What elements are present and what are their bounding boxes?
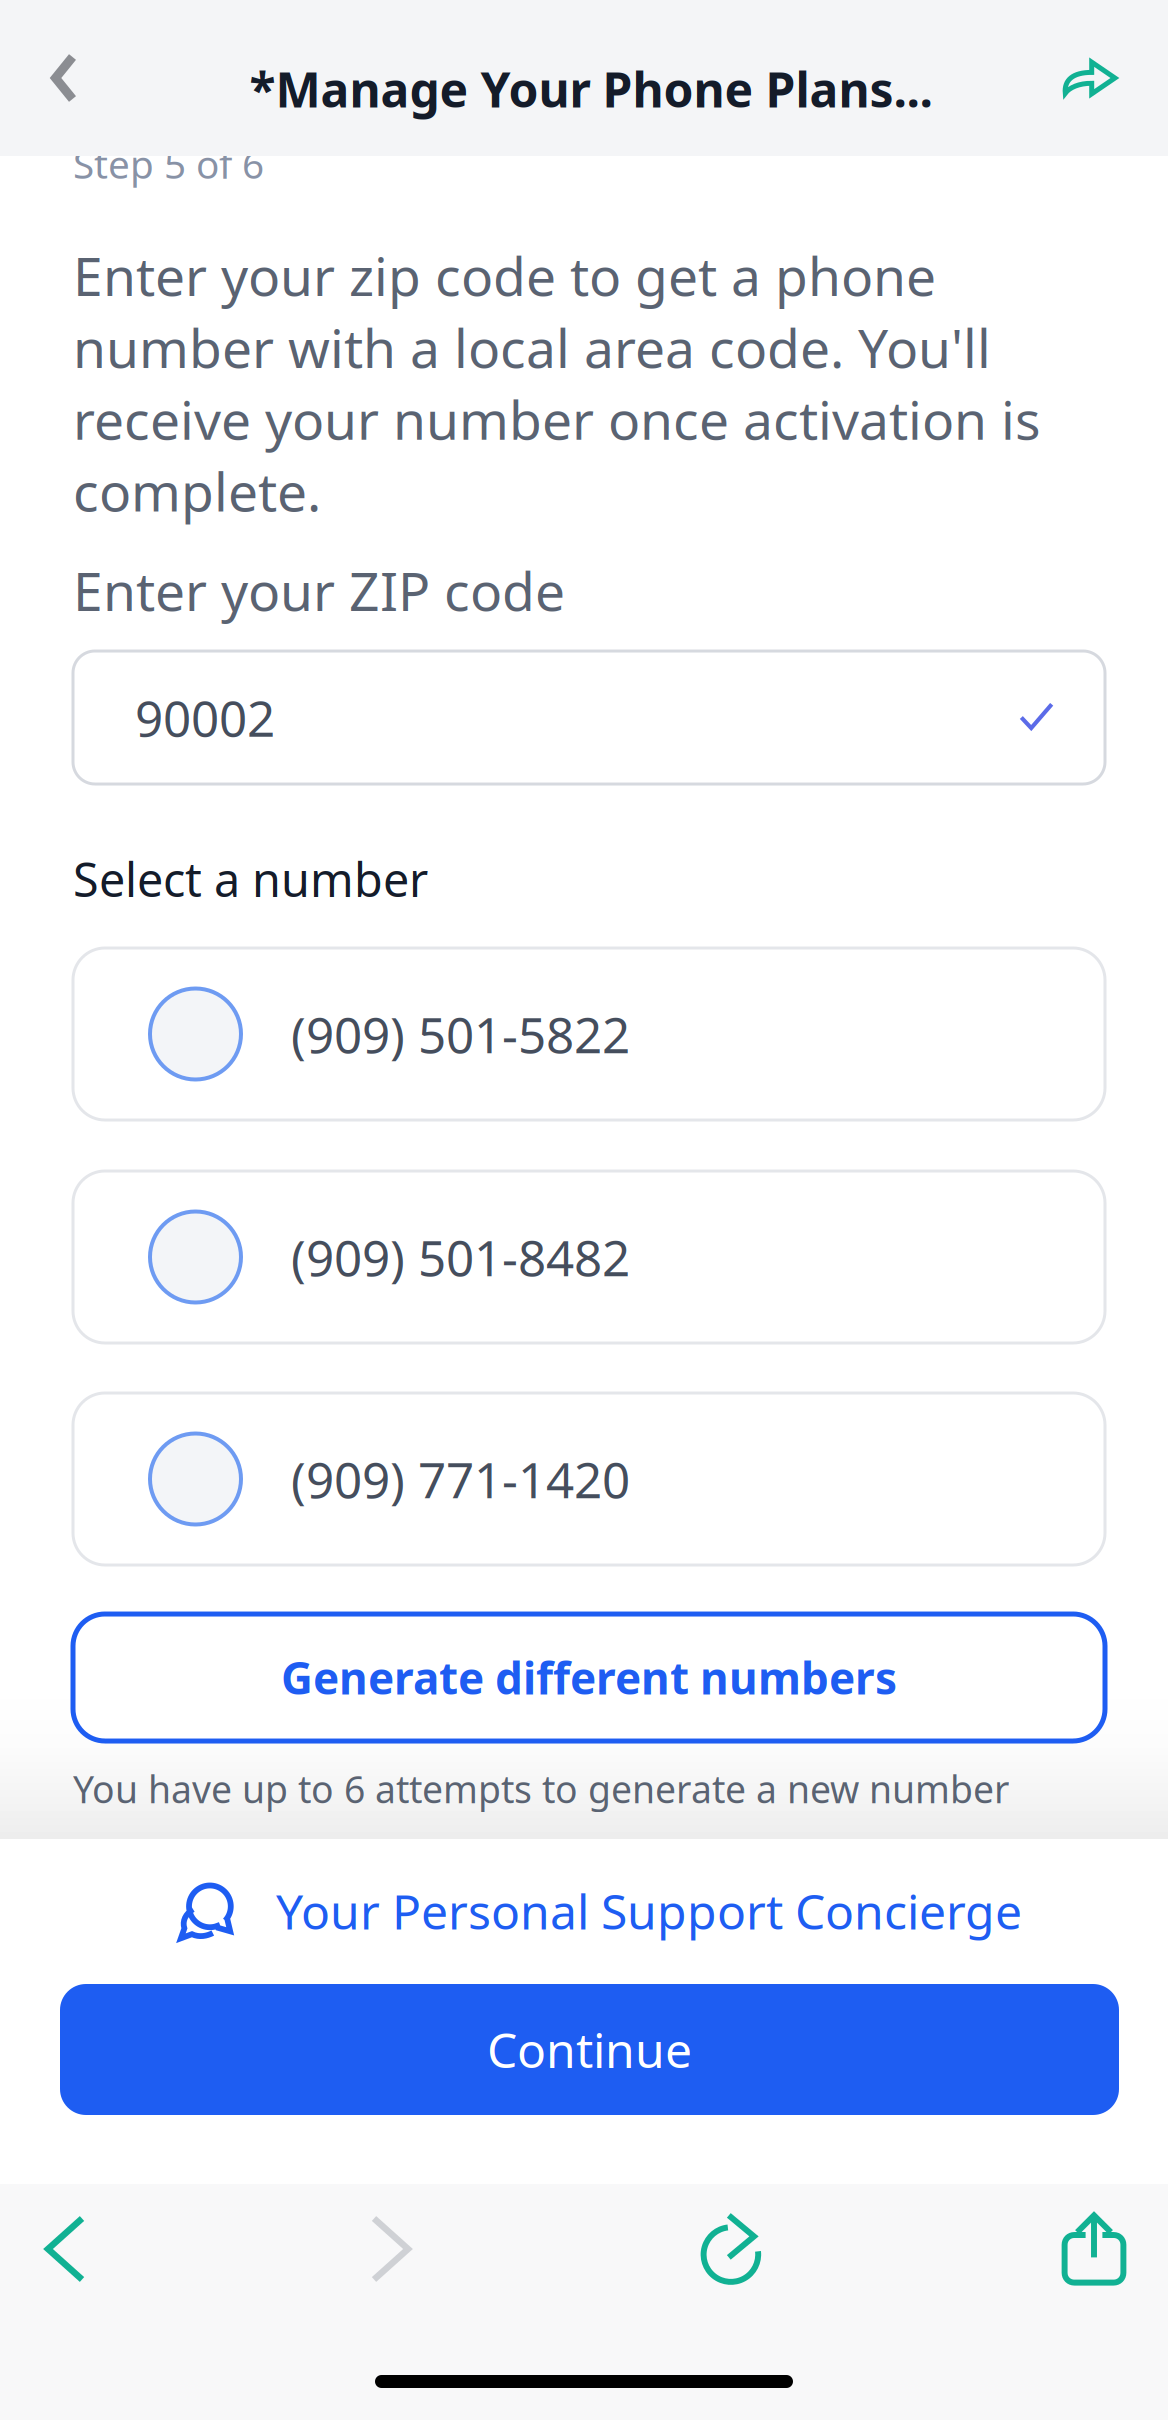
button[interactable]: Share [1030, 19, 1148, 137]
button[interactable]: (909) 501-5822 [73, 948, 1105, 1120]
staticText: (909) 771-1420 [291, 1446, 630, 1512]
staticText: (909) 501-8482 [291, 1224, 630, 1290]
button[interactable]: Reload [664, 2184, 802, 2314]
button[interactable]: (909) 771-1420 [73, 1393, 1105, 1565]
button[interactable]: Continue [60, 1984, 1119, 2115]
staticText: Continue [487, 2018, 692, 2081]
staticText: Step 5 of 6 [73, 138, 264, 189]
button[interactable]: Back [5, 19, 123, 137]
staticText: Select a number [73, 848, 428, 910]
staticText: You have up to 6 attempts to generate a … [73, 1764, 1009, 1814]
button[interactable]: Generate different numbers [73, 1614, 1105, 1741]
button[interactable]: Share [1025, 2184, 1163, 2314]
staticText: Enter your ZIP code [73, 555, 565, 626]
staticText: Enter your zip code to get a phone numbe… [73, 240, 1041, 526]
staticText: (909) 501-5822 [291, 1001, 630, 1067]
button[interactable]: Back [0, 2184, 134, 2314]
button[interactable]: (909) 501-8482 [73, 1171, 1105, 1343]
staticText: Your Personal Support Concierge [276, 1879, 1022, 1943]
staticText: Generate different numbers [281, 1648, 897, 1707]
staticText: *Manage Your Phone Plans... [249, 57, 932, 121]
staticText: 90002 [135, 685, 275, 750]
button[interactable]: Forward [322, 2184, 460, 2314]
button[interactable]: Your Personal Support Concierge [178, 1875, 1022, 1947]
